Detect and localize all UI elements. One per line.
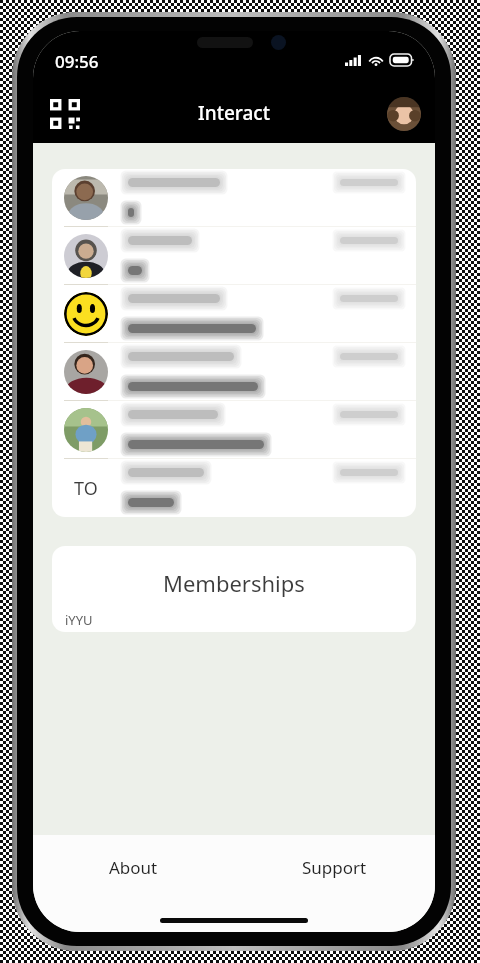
staticText: iYYU [65, 611, 93, 629]
staticText: Support [302, 856, 367, 879]
staticText: Interact [198, 100, 270, 126]
button[interactable] [52, 169, 416, 227]
button[interactable]: Profile [383, 93, 425, 135]
button[interactable]: Scan QR code [44, 93, 86, 135]
button[interactable] [52, 285, 416, 343]
button[interactable]: Support [234, 835, 435, 897]
staticText: 09:56 [55, 50, 99, 73]
staticText: TO [74, 476, 98, 501]
staticText: Memberships [163, 568, 305, 598]
button[interactable] [52, 401, 416, 459]
button[interactable] [52, 343, 416, 401]
staticText: About [109, 856, 158, 879]
button[interactable]: About [33, 835, 234, 897]
button[interactable]: TO [52, 459, 416, 517]
button[interactable]: Memberships [52, 546, 416, 632]
button[interactable] [52, 227, 416, 285]
